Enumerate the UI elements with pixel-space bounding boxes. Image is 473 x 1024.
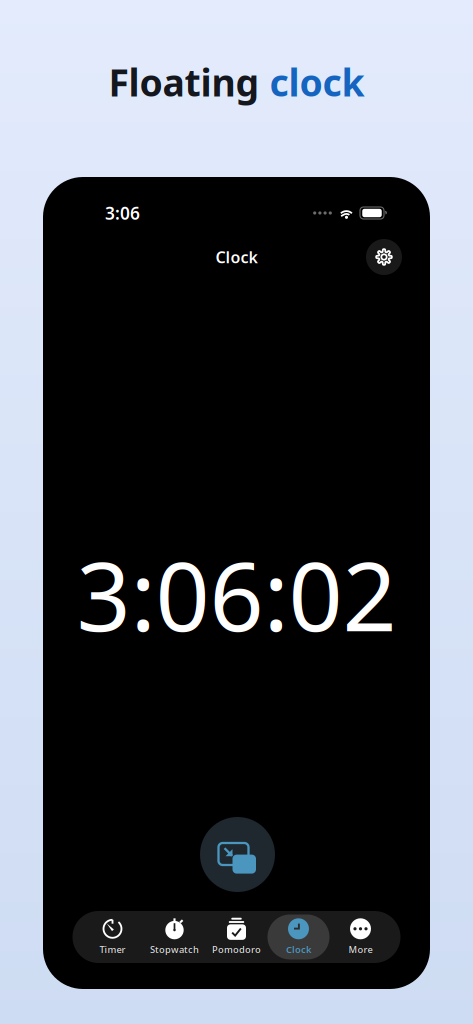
staticText: clock — [269, 57, 364, 107]
staticText: Clock — [286, 943, 311, 956]
staticText: More — [348, 943, 372, 956]
staticText: Pomodoro — [212, 943, 261, 956]
button[interactable]: Clock — [267, 914, 329, 959]
button[interactable]: Settings — [366, 239, 402, 275]
button[interactable]: Pomodoro — [205, 914, 267, 959]
staticText: Clock — [215, 246, 257, 268]
button[interactable]: Float clock window — [200, 817, 275, 892]
staticText: 3:06:02 — [76, 532, 396, 657]
staticText: Stopwatch — [150, 943, 199, 956]
button[interactable]: Timer — [81, 914, 143, 959]
staticText: Floating — [108, 57, 269, 107]
staticText: 3:06 — [105, 201, 140, 224]
button[interactable]: More — [329, 914, 391, 959]
button[interactable]: Stopwatch — [143, 914, 205, 959]
staticText: Timer — [99, 943, 125, 956]
